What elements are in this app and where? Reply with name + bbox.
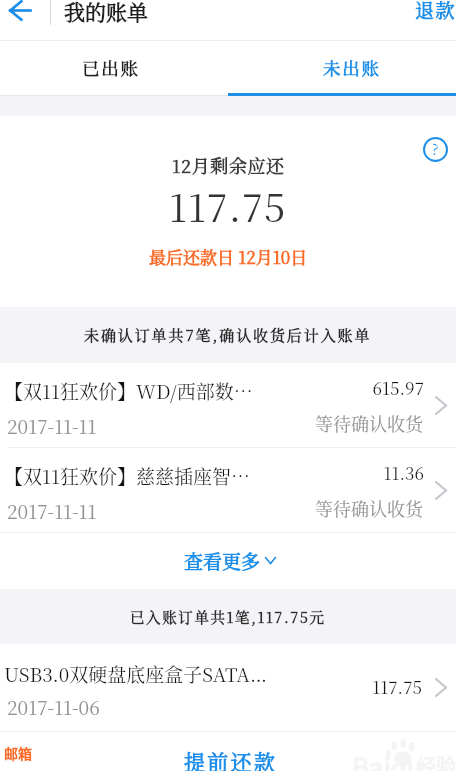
staticText: 等待确认收货 (296, 410, 423, 436)
staticText: Baidu (352, 747, 423, 771)
button[interactable]: Help (417, 131, 454, 168)
button[interactable]: 邮箱 (0, 740, 36, 766)
button[interactable]: 退款 (406, 0, 456, 30)
staticText: 117.75 (298, 674, 422, 698)
button[interactable]: 【双11狂欢价】慈慈插座智… (0, 448, 456, 532)
staticText: 2017-11-11 (7, 497, 97, 524)
button[interactable]: Back (0, 0, 42, 31)
staticText: 2017-11-11 (7, 412, 97, 439)
staticText: 12月剩余应还 (172, 152, 285, 178)
staticText: USB3.0双硬盘底座盒子SATA… (4, 660, 276, 687)
button[interactable]: USB3.0双硬盘底座盒子SATA… (0, 644, 456, 731)
staticText: 查看更多 (184, 547, 261, 574)
staticText: 2017-11-06 (7, 693, 100, 720)
staticText: 等待确认收货 (296, 495, 423, 521)
staticText: 11.36 (300, 460, 424, 484)
staticText: 【双11狂欢价】WD/西部数… (4, 377, 276, 404)
staticText: 已出账 (82, 55, 140, 80)
button[interactable]: 提前还款 (170, 746, 292, 771)
staticText: 已入账订单共1笔,117.75元 (130, 606, 326, 627)
staticText: 615.97 (300, 375, 424, 399)
staticText: 我的账单 (64, 0, 148, 26)
staticText: 经验 (416, 751, 456, 771)
button[interactable]: 【双11狂欢价】WD/西部数… (0, 363, 456, 447)
staticText: 提前还款 (184, 746, 278, 771)
staticText: 未确认订单共7笔,确认收货后计入账单 (84, 324, 372, 346)
staticText: 退款 (415, 0, 456, 23)
button[interactable]: 已出账 (0, 41, 228, 96)
staticText: 未出账 (323, 55, 381, 80)
staticText: 117.75 (169, 178, 287, 233)
staticText: 邮箱 (4, 743, 32, 763)
staticText: 【双11狂欢价】慈慈插座智… (4, 462, 276, 489)
staticText: ? (432, 138, 439, 160)
button[interactable]: 未出账 (228, 41, 456, 96)
staticText: 最后还款日 12月10日 (149, 244, 308, 268)
button[interactable]: 查看更多 (0, 533, 456, 589)
